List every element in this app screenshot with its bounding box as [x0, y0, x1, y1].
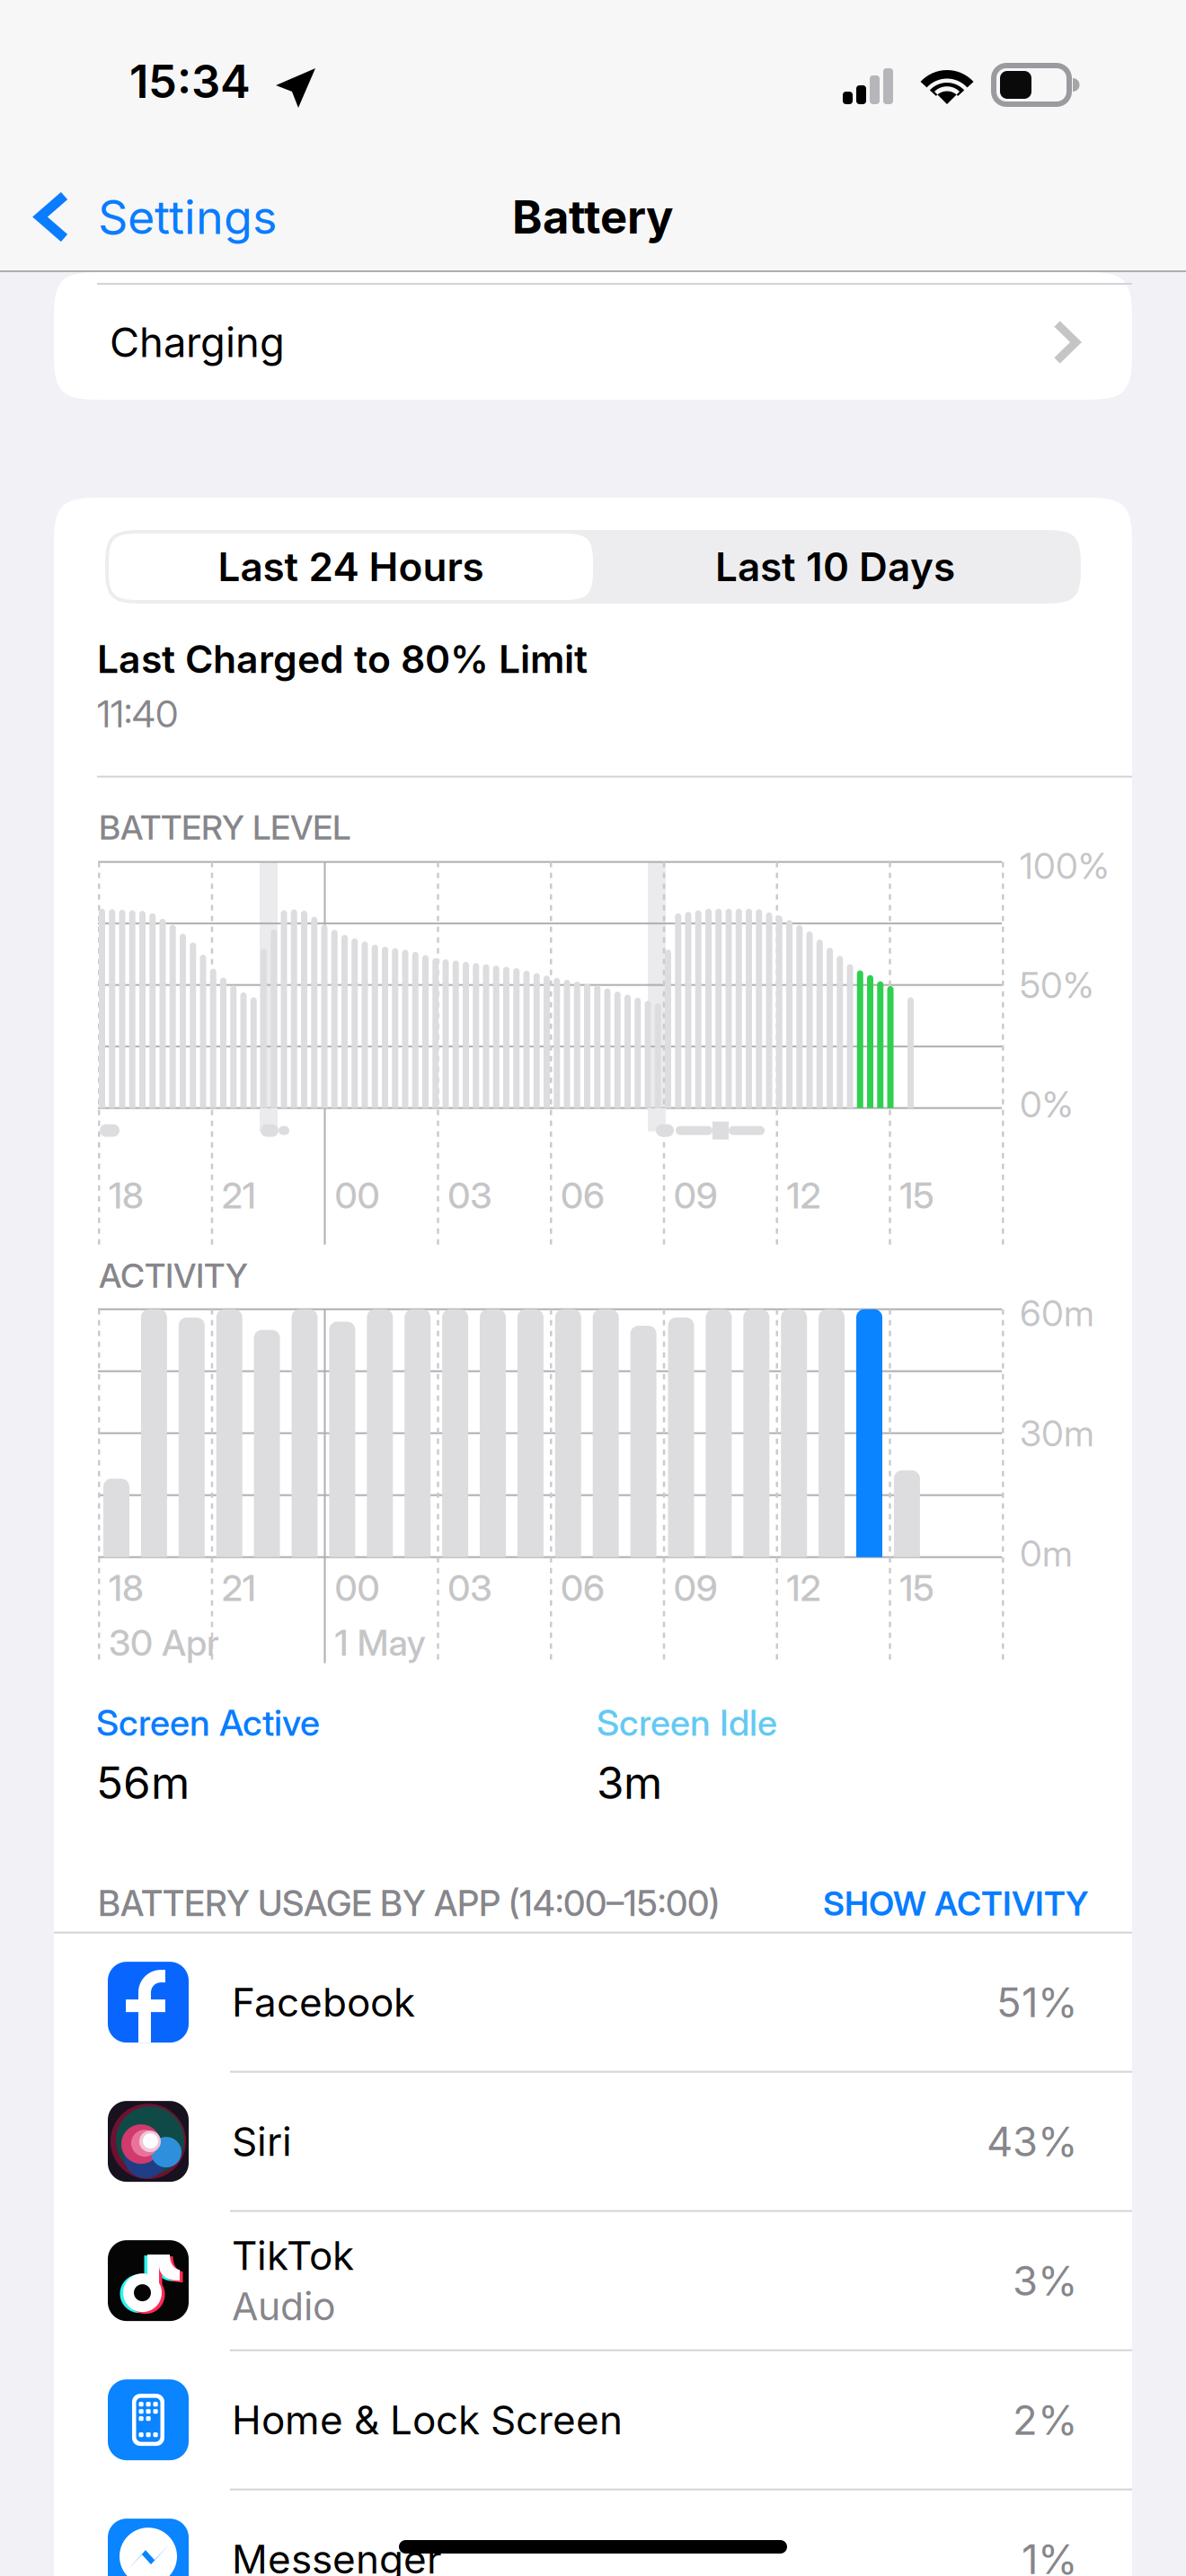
button[interactable]: SHOW ACTIVITY	[823, 1883, 1089, 1924]
staticText: Last 24 Hours	[218, 543, 484, 591]
staticText: 09	[674, 1174, 718, 1217]
staticText: 0m	[1020, 1532, 1073, 1575]
staticText: 00	[335, 1566, 380, 1610]
staticText: 51%	[996, 1978, 1078, 2027]
button[interactable]: Last 24 Hours	[109, 534, 593, 600]
staticText: 3m	[597, 1756, 662, 1810]
staticText: 2%	[1013, 2395, 1078, 2445]
staticText: Messenger	[232, 2535, 442, 2576]
staticText: Home & Lock Screen	[232, 2396, 623, 2444]
staticText: 50%	[1020, 963, 1093, 1007]
staticText: 56m	[96, 1756, 190, 1810]
button[interactable]: Last 10 Days	[593, 534, 1077, 600]
staticText: 1%	[1022, 2534, 1078, 2576]
staticText: SHOW ACTIVITY	[823, 1883, 1089, 1924]
staticText: 0%	[1020, 1082, 1073, 1126]
staticText: 06	[561, 1174, 605, 1217]
staticText: ACTIVITY	[99, 1255, 248, 1296]
staticText: 100%	[1020, 844, 1109, 887]
staticText: Last Charged to 80% Limit	[97, 636, 588, 682]
button[interactable]: Charging	[54, 285, 1132, 400]
staticText: Charging	[110, 318, 285, 367]
staticText: BATTERY LEVEL	[99, 807, 350, 848]
button[interactable]: Messenger	[54, 2490, 1132, 2576]
button[interactable]: Facebook	[54, 1933, 1132, 2073]
staticText: Siri	[232, 2117, 292, 2165]
staticText: 15:34	[129, 54, 251, 109]
staticText: 3%	[1013, 2256, 1078, 2305]
staticText: 09	[674, 1566, 718, 1610]
staticText: 60m	[1020, 1291, 1094, 1335]
staticText: 12	[787, 1566, 821, 1610]
staticText: Screen Active	[96, 1701, 320, 1744]
button[interactable]: Home & Lock Screen	[54, 2351, 1132, 2490]
staticText: 12	[787, 1174, 821, 1217]
staticText: 18	[109, 1174, 144, 1217]
staticText: 1 May	[335, 1621, 425, 1664]
staticText: BATTERY USAGE BY APP (14:00–15:00)	[98, 1882, 720, 1924]
staticText: TikTok	[232, 2232, 354, 2280]
staticText: Audio	[232, 2283, 336, 2329]
button[interactable]: Siri	[54, 2073, 1132, 2212]
staticText: 30 Apr	[109, 1621, 219, 1664]
staticText: 15	[900, 1566, 934, 1610]
staticText: 11:40	[97, 691, 178, 736]
staticText: Screen Idle	[597, 1701, 777, 1744]
staticText: Last 10 Days	[715, 543, 955, 591]
staticText: 00	[335, 1174, 380, 1217]
staticText: Battery	[512, 189, 674, 244]
staticText: 30m	[1020, 1411, 1094, 1455]
button[interactable]: TikTok	[54, 2212, 1132, 2351]
staticText: Facebook	[232, 1978, 415, 2026]
staticText: 43%	[987, 2117, 1078, 2166]
button[interactable]: Settings	[0, 163, 298, 270]
staticText: 03	[448, 1566, 492, 1610]
staticText: Settings	[98, 189, 277, 245]
staticText: 18	[109, 1566, 144, 1610]
staticText: 03	[448, 1174, 492, 1217]
staticText: 06	[561, 1566, 605, 1610]
staticText: 21	[222, 1174, 256, 1217]
staticText: 21	[222, 1566, 256, 1610]
staticText: 15	[900, 1174, 934, 1217]
